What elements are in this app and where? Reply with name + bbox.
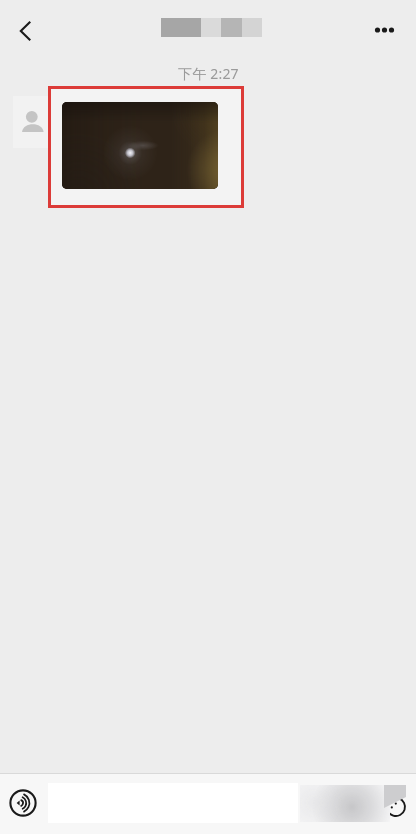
- button[interactable]: Emoji: [382, 793, 410, 821]
- staticText: 下午 2:27: [178, 64, 239, 83]
- button[interactable]: More options: [361, 7, 407, 53]
- button[interactable]: Add attachment: [300, 785, 390, 822]
- button[interactable]: Avatar: [13, 96, 49, 148]
- button[interactable]: Back: [0, 7, 46, 53]
- button[interactable]: Voice message: [5, 785, 41, 821]
- button[interactable]: [51, 89, 241, 205]
